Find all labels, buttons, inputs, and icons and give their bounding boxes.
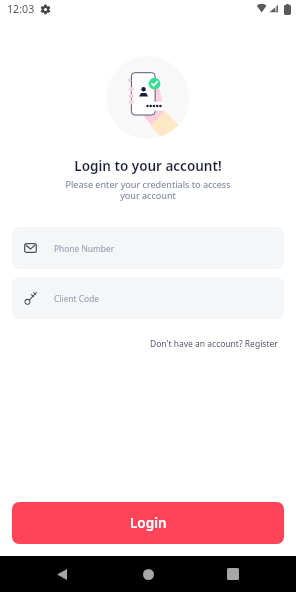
button[interactable]: Login xyxy=(12,502,284,544)
button[interactable]: Client Code xyxy=(12,277,284,319)
button[interactable]: Phone Number xyxy=(12,227,284,269)
staticText: Client Code xyxy=(54,293,100,304)
staticText: Don't have an account? Register xyxy=(150,338,278,350)
button[interactable]: Don't have an account? Register xyxy=(150,338,278,350)
button[interactable]: Home xyxy=(127,556,169,592)
button[interactable]: Back xyxy=(41,556,83,592)
button[interactable]: Recent apps xyxy=(212,556,254,592)
staticText: Please enter your credentials to access … xyxy=(0,178,296,202)
staticText: Login to your account! xyxy=(0,157,296,175)
staticText: 12:03 xyxy=(7,2,35,17)
staticText: Phone Number xyxy=(54,243,115,254)
staticText: Login xyxy=(130,514,167,532)
button[interactable]: Settings xyxy=(41,5,50,14)
